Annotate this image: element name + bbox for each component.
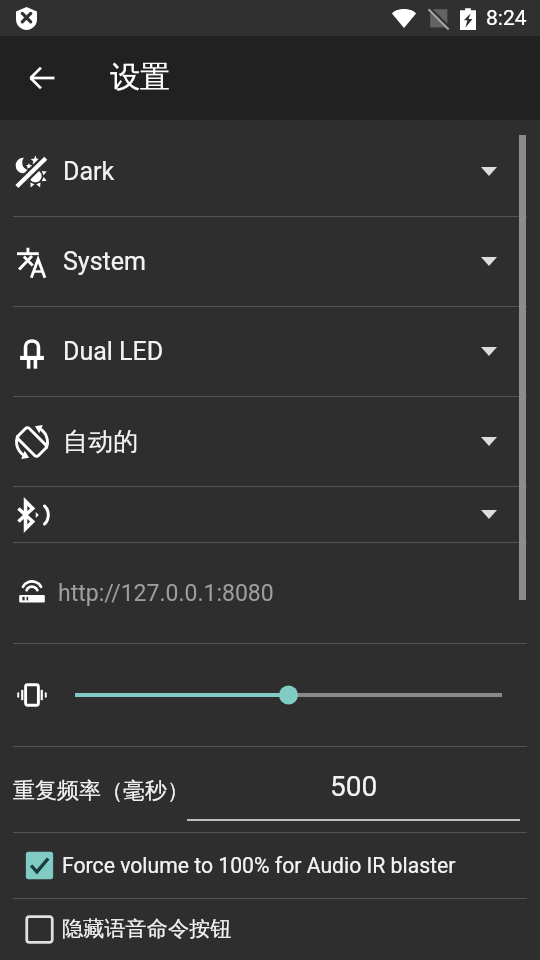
- button[interactable]: System: [0, 217, 540, 306]
- staticText: http://127.0.0.1:8080: [58, 580, 274, 607]
- staticText: Force volume to 100% for Audio IR blaste…: [62, 853, 456, 878]
- button[interactable]: Dark: [0, 127, 540, 216]
- staticText: 8:24: [486, 6, 527, 31]
- button[interactable]: 自动的: [0, 397, 540, 486]
- button[interactable]: Back: [14, 50, 70, 106]
- button[interactable]: 隐藏语音命令按钮: [0, 899, 540, 960]
- staticText: 重复频率（毫秒）: [13, 777, 189, 805]
- staticText: 自动的: [63, 426, 138, 457]
- button[interactable]: 500: [187, 759, 520, 821]
- button[interactable]: http://127.0.0.1:8080: [0, 543, 540, 643]
- button[interactable]: Dual LED: [0, 307, 540, 396]
- button[interactable]: [0, 487, 540, 542]
- button[interactable]: Vibration strength: [75, 671, 502, 719]
- staticText: System: [63, 247, 146, 276]
- staticText: Dual LED: [63, 337, 164, 366]
- staticText: Dark: [63, 157, 115, 186]
- button[interactable]: Force volume to 100% for Audio IR blaste…: [0, 833, 540, 898]
- staticText: 隐藏语音命令按钮: [62, 916, 232, 943]
- staticText: 设置: [110, 58, 170, 96]
- staticText: 500: [330, 770, 378, 803]
